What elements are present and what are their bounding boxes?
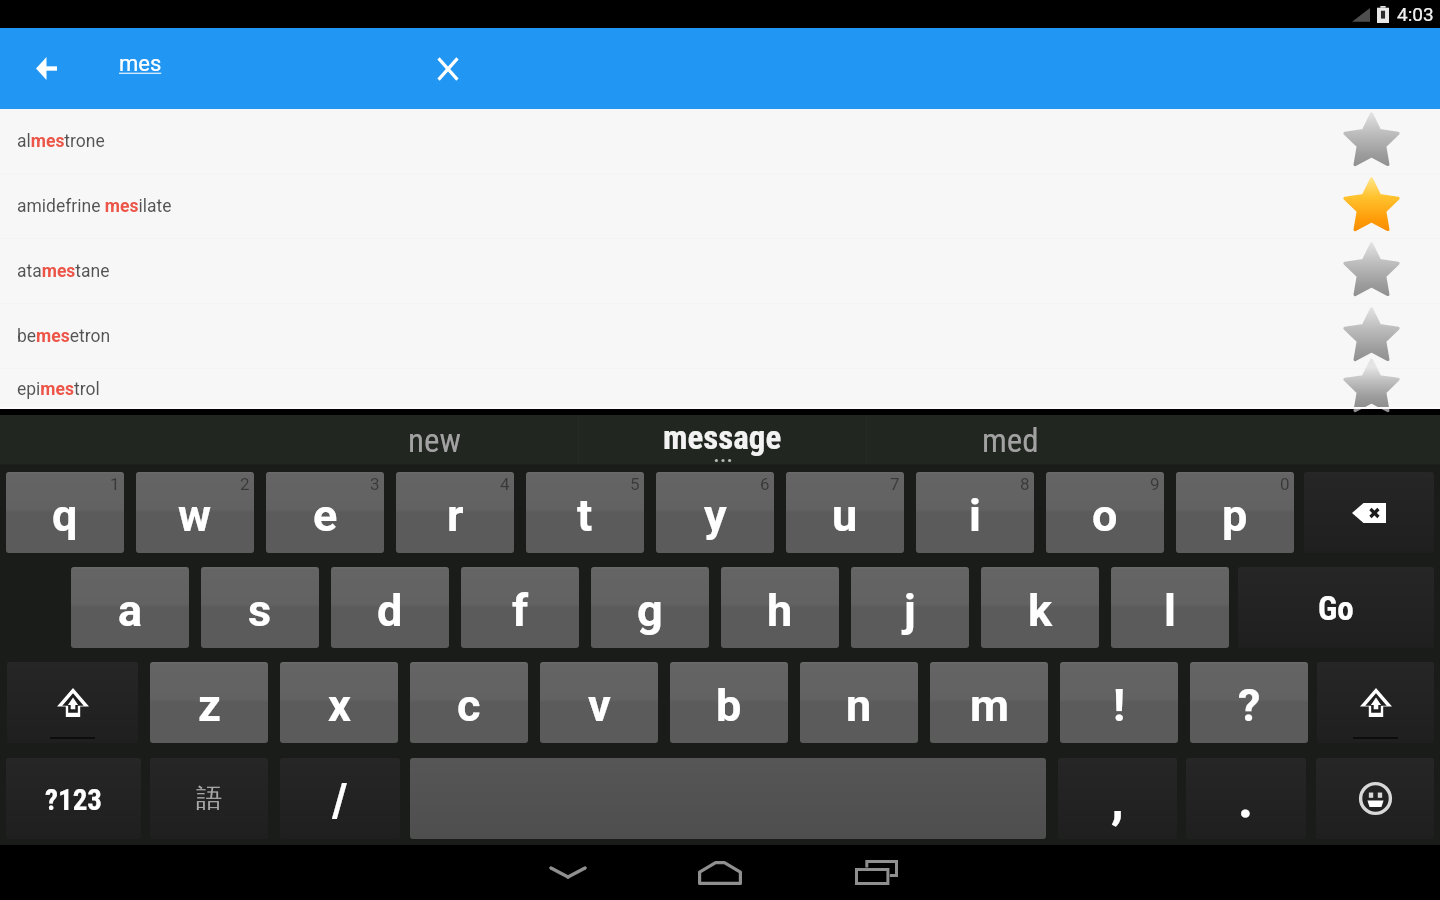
button[interactable]: t xyxy=(526,472,644,553)
button[interactable]: mes xyxy=(100,42,400,94)
staticText: r xyxy=(447,489,464,542)
button[interactable]: v xyxy=(540,662,658,743)
staticText: u xyxy=(832,489,858,542)
button[interactable]: ! xyxy=(1060,662,1178,743)
button[interactable]: , xyxy=(1058,758,1177,839)
button[interactable]: . xyxy=(1186,758,1306,839)
staticText: w xyxy=(178,489,212,542)
button[interactable]: m xyxy=(930,662,1048,743)
button[interactable]: s xyxy=(201,567,319,648)
button[interactable]: j xyxy=(851,567,969,648)
staticText: 4:03 xyxy=(1397,3,1434,25)
button[interactable]: Favourite xyxy=(1340,176,1402,238)
staticText: 語 xyxy=(196,782,222,815)
button[interactable]: almestrone xyxy=(0,109,1440,174)
staticText: , xyxy=(1111,769,1124,830)
staticText: 9 xyxy=(1150,474,1160,494)
button[interactable]: e xyxy=(266,472,384,553)
button[interactable]: Shift xyxy=(7,662,138,743)
button[interactable]: g xyxy=(591,567,709,648)
button[interactable]: Emoji xyxy=(1316,758,1434,839)
staticText: 0 xyxy=(1280,474,1290,494)
button[interactable]: k xyxy=(981,567,1099,648)
staticText: n xyxy=(846,679,872,732)
button[interactable]: w xyxy=(136,472,254,553)
button[interactable]: h xyxy=(721,567,839,648)
button[interactable]: Hide keyboard xyxy=(536,845,600,900)
button[interactable]: n xyxy=(800,662,918,743)
button[interactable]: med xyxy=(867,415,1154,465)
button[interactable]: c xyxy=(410,662,528,743)
staticText: amidefrine mesilate xyxy=(17,196,1340,217)
button[interactable]: amidefrine mesilate xyxy=(0,174,1440,239)
button[interactable]: Go xyxy=(1238,567,1434,648)
button[interactable]: z xyxy=(150,662,268,743)
staticText: atamestane xyxy=(17,261,1340,282)
staticText: c xyxy=(457,679,481,732)
button[interactable]: u xyxy=(786,472,904,553)
button[interactable]: l xyxy=(1111,567,1229,648)
staticText: x xyxy=(328,679,351,732)
staticText: k xyxy=(1028,584,1053,637)
staticText: ?123 xyxy=(45,783,102,817)
staticText: Go xyxy=(1318,589,1354,628)
button[interactable]: bemesetron xyxy=(0,304,1440,369)
button[interactable]: r xyxy=(396,472,514,553)
button[interactable]: i xyxy=(916,472,1034,553)
button[interactable]: d xyxy=(331,567,449,648)
button[interactable]: Backspace xyxy=(1304,472,1434,553)
button[interactable]: / xyxy=(280,758,400,839)
button[interactable]: Change language xyxy=(150,758,268,839)
staticText: l xyxy=(1164,584,1176,637)
button[interactable]: new xyxy=(291,415,578,465)
staticText: m xyxy=(970,679,1009,732)
button[interactable]: y xyxy=(656,472,774,553)
staticText: z xyxy=(198,679,221,732)
button[interactable]: q xyxy=(6,472,124,553)
staticText: p xyxy=(1222,489,1248,542)
button[interactable]: Back xyxy=(22,48,71,89)
staticText: 5 xyxy=(630,474,640,494)
button[interactable]: Clear search xyxy=(423,48,472,89)
button[interactable]: message xyxy=(579,415,866,465)
button[interactable]: f xyxy=(461,567,579,648)
staticText: 4 xyxy=(500,474,510,494)
button[interactable]: epimestrol xyxy=(0,369,1440,409)
staticText: ! xyxy=(1113,679,1126,732)
button[interactable]: ? xyxy=(1190,662,1308,743)
button[interactable]: o xyxy=(1046,472,1164,553)
staticText: . xyxy=(1238,769,1254,830)
button[interactable]: a xyxy=(71,567,189,648)
button[interactable]: ?123 xyxy=(6,758,141,839)
staticText: 2 xyxy=(240,474,250,494)
staticText: a xyxy=(118,584,143,637)
button[interactable]: atamestane xyxy=(0,239,1440,304)
staticText: 1 xyxy=(110,474,120,494)
button[interactable]: Favourite xyxy=(1340,111,1402,173)
button[interactable]: Favourite xyxy=(1340,369,1402,409)
button[interactable]: Favourite xyxy=(1340,306,1402,368)
staticText: epimestrol xyxy=(17,379,1340,400)
button[interactable]: Shift xyxy=(1317,662,1434,743)
button[interactable]: Recent apps xyxy=(844,845,908,900)
staticText: i xyxy=(969,489,981,542)
staticText: f xyxy=(512,584,529,637)
staticText: e xyxy=(313,489,338,542)
staticText: / xyxy=(332,772,348,827)
staticText: med xyxy=(982,421,1039,460)
staticText: ? xyxy=(1238,679,1261,732)
staticText: t xyxy=(577,489,593,542)
staticText: y xyxy=(704,489,727,542)
staticText: 6 xyxy=(760,474,770,494)
staticText: 8 xyxy=(1020,474,1030,494)
button[interactable]: Favourite xyxy=(1340,241,1402,303)
staticText: new xyxy=(408,421,461,460)
staticText: almestrone xyxy=(17,131,1340,152)
button[interactable]: b xyxy=(670,662,788,743)
button[interactable]: p xyxy=(1176,472,1294,553)
staticText: j xyxy=(904,584,916,637)
button[interactable]: x xyxy=(280,662,398,743)
staticText: mes xyxy=(119,51,162,77)
button[interactable]: Home xyxy=(688,845,752,900)
